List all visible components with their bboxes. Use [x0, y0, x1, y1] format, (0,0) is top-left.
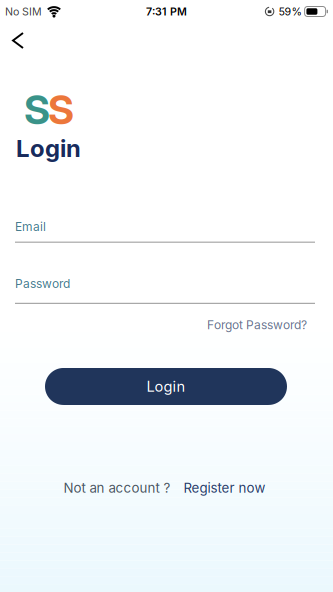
- staticText: Login: [16, 134, 81, 162]
- staticText: No SIM: [5, 5, 42, 18]
- button[interactable]: Forgot Password?: [207, 318, 307, 332]
- staticText: 59%: [279, 5, 302, 18]
- button[interactable]: Password: [0, 277, 333, 304]
- button[interactable]: Email: [0, 219, 333, 243]
- staticText: Login: [146, 378, 185, 395]
- button[interactable]: Login: [45, 368, 287, 405]
- staticText: Register now: [183, 480, 265, 496]
- staticText: Email: [15, 219, 46, 234]
- staticText: Forgot Password?: [207, 318, 307, 332]
- button[interactable]: [0, 22, 23, 48]
- staticText: Not an account ?: [63, 480, 170, 496]
- staticText: S: [48, 86, 74, 133]
- button[interactable]: Not an account ?: [0, 480, 333, 496]
- staticText: 7:31 PM: [146, 5, 187, 18]
- staticText: Password: [15, 277, 70, 291]
- staticText: S: [24, 86, 50, 133]
